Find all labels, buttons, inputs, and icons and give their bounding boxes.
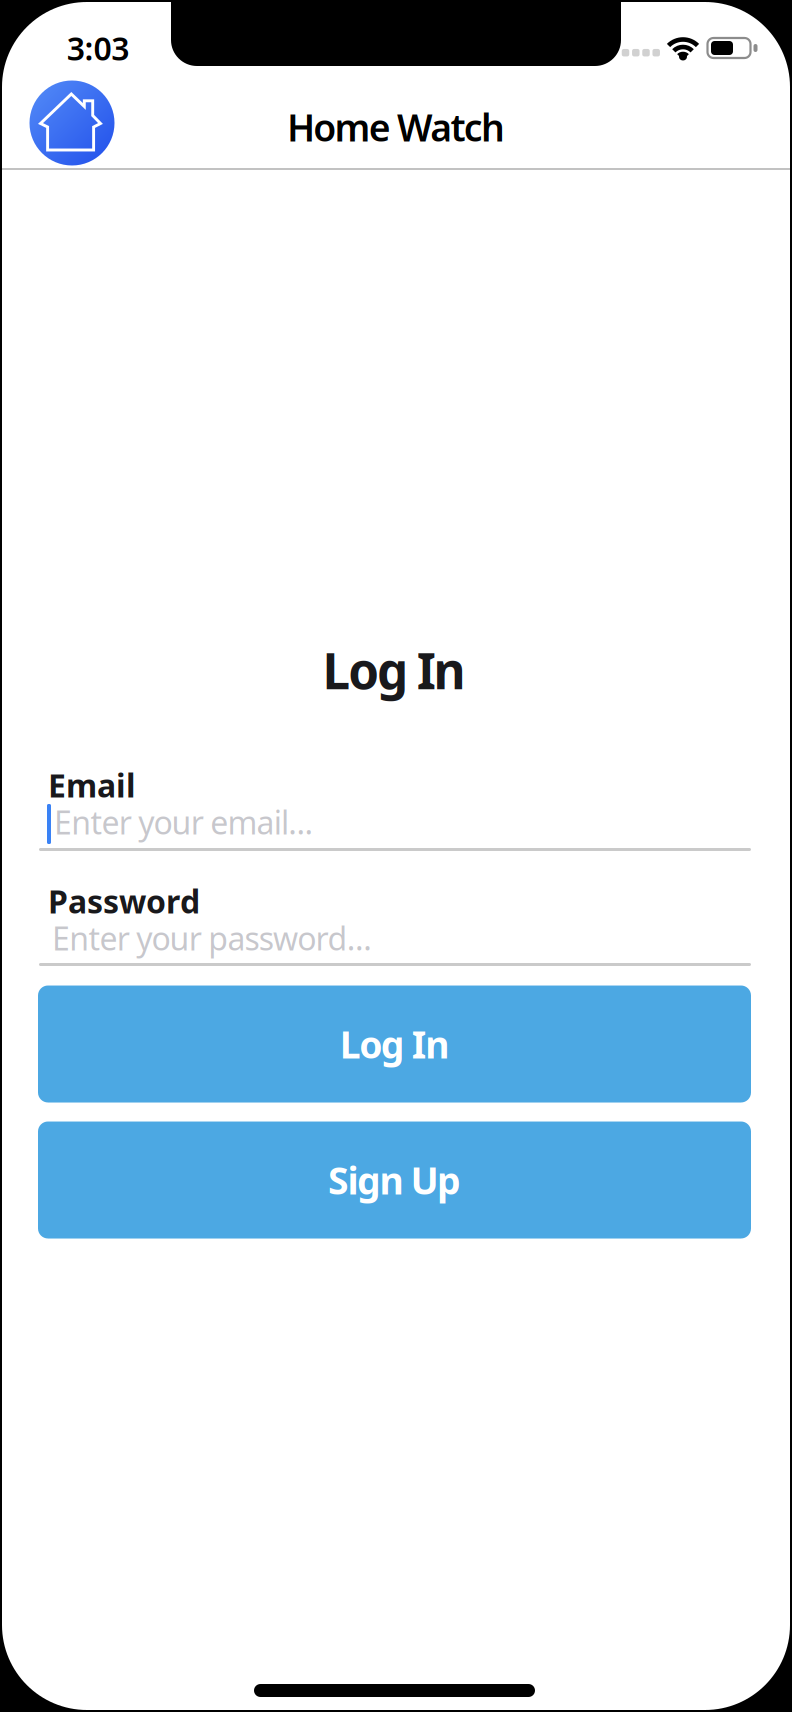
staticText: Email <box>48 764 136 806</box>
staticText: Home Watch <box>287 102 505 152</box>
staticText: Password <box>48 880 200 922</box>
staticText: Enter your email... <box>54 801 314 843</box>
staticText: Log In <box>322 637 465 703</box>
staticText: Sign Up <box>328 1155 461 1205</box>
button[interactable]: Sign Up <box>38 1121 751 1238</box>
staticText: Enter your password... <box>52 917 372 959</box>
button[interactable]: Log In <box>38 985 751 1102</box>
staticText: Log In <box>340 1019 449 1069</box>
button[interactable]: Home <box>29 80 114 165</box>
staticText: 3:03 <box>67 27 129 69</box>
